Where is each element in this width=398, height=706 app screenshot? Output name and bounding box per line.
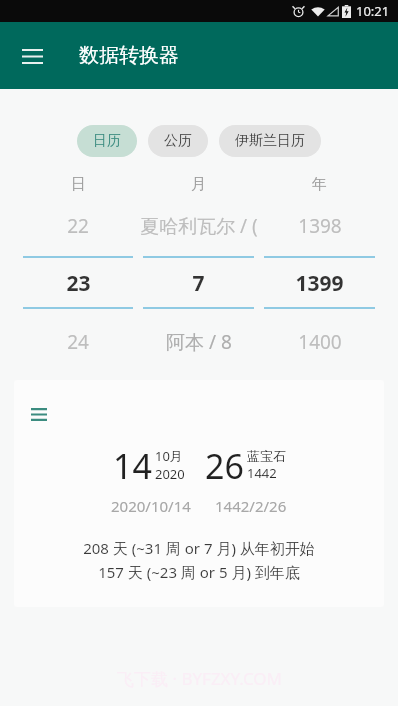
staticText: 夏哈利瓦尔 / ( xyxy=(140,213,258,239)
staticText: 蓝宝石 xyxy=(247,448,286,464)
staticText: 10:21 xyxy=(356,2,390,20)
staticText: 1442 xyxy=(247,464,277,482)
button[interactable]: Open navigation drawer xyxy=(13,37,51,75)
staticText: 阿本 / 8 xyxy=(166,329,232,355)
button[interactable]: 7 xyxy=(138,269,259,297)
staticText: 年 xyxy=(312,175,327,194)
button[interactable]: 22 xyxy=(18,212,138,240)
button[interactable]: 伊斯兰日历 xyxy=(219,125,321,157)
staticText: 数据转换器 xyxy=(79,43,179,68)
staticText: 日历 xyxy=(93,132,121,150)
staticText: 208 天 (~31 周 or 7 月) 从年初开始 xyxy=(14,538,384,558)
button[interactable]: 1400 xyxy=(259,328,380,356)
staticText: 2020/10/14 xyxy=(111,496,191,516)
staticText: 日 xyxy=(71,175,86,194)
staticText: 22 xyxy=(67,213,89,239)
button[interactable]: 阿本 / 8 xyxy=(138,328,259,356)
staticText: 2020 xyxy=(155,465,185,483)
button[interactable]: More options xyxy=(14,380,384,607)
button[interactable]: 夏哈利瓦尔 / ( xyxy=(138,212,259,240)
button[interactable]: 1399 xyxy=(259,269,380,297)
staticText: 1398 xyxy=(298,213,342,239)
staticText: 1400 xyxy=(298,329,342,355)
staticText: 1442/2/26 xyxy=(215,496,287,516)
staticText: 月 xyxy=(191,175,206,194)
staticText: 10月 xyxy=(155,447,183,465)
staticText: 14 xyxy=(113,443,152,489)
staticText: 157 天 (~23 周 or 5 月) 到年底 xyxy=(14,562,384,582)
staticText: 飞下载 · BYFZXY.COM xyxy=(117,667,282,690)
staticText: 7 xyxy=(192,269,205,297)
staticText: 公历 xyxy=(164,132,192,150)
button[interactable]: 23 xyxy=(18,269,138,297)
staticText: 26 xyxy=(205,443,244,489)
staticText: 24 xyxy=(67,329,89,355)
button[interactable]: 1398 xyxy=(259,212,380,240)
button[interactable]: 公历 xyxy=(148,125,208,157)
staticText: 1399 xyxy=(295,269,344,297)
button[interactable]: 日历 xyxy=(77,125,137,157)
button[interactable]: 24 xyxy=(18,328,138,356)
button[interactable]: More options xyxy=(31,401,57,427)
staticText: 伊斯兰日历 xyxy=(235,132,305,150)
staticText: 23 xyxy=(66,269,91,297)
